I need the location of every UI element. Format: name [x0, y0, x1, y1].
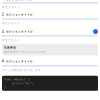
staticText: 補足説明のテキストが入ります — [4, 50, 46, 53]
staticText: print("hi") — [4, 82, 34, 85]
staticText: 3. セクションタイトル — [2, 30, 33, 33]
staticText: 本文テキスト — [2, 5, 20, 9]
staticText: 本文テキスト — [2, 39, 20, 42]
staticText: 本文テキスト — [2, 22, 20, 25]
staticText: 注意事項 — [4, 46, 16, 49]
staticText: コードの例を以下に示します — [2, 68, 41, 72]
staticText: func main() { — [4, 78, 30, 81]
staticText: 2. セクションタイトル — [2, 13, 33, 16]
staticText: } — [4, 86, 6, 89]
staticText: 1. セクションタイトル — [2, 0, 33, 1]
staticText: 4. セクションタイトル — [2, 59, 33, 63]
